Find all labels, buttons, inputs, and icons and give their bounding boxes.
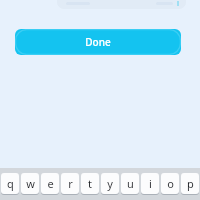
staticText: t — [88, 176, 92, 191]
staticText: Done — [85, 35, 111, 49]
staticText: y — [107, 176, 113, 191]
button[interactable]: Done — [15, 29, 181, 55]
staticText: i — [149, 176, 152, 191]
staticText: o — [167, 176, 174, 191]
staticText: r — [68, 176, 73, 191]
button[interactable]: u — [121, 173, 139, 196]
staticText: w — [26, 176, 35, 191]
button[interactable]: t — [81, 173, 99, 196]
staticText: p — [187, 176, 194, 191]
button[interactable]: q — [1, 173, 19, 196]
button[interactable]: w — [21, 173, 39, 196]
staticText: q — [7, 176, 14, 191]
button[interactable]: o — [161, 173, 179, 196]
button[interactable]: p — [181, 173, 199, 196]
staticText: u — [127, 176, 134, 191]
button[interactable]: r — [61, 173, 79, 196]
button[interactable]: y — [101, 173, 119, 196]
button[interactable]: e — [41, 173, 59, 196]
button[interactable]: i — [141, 173, 159, 196]
button[interactable]: Suggestion panel — [57, 0, 186, 9]
staticText: e — [47, 176, 54, 191]
